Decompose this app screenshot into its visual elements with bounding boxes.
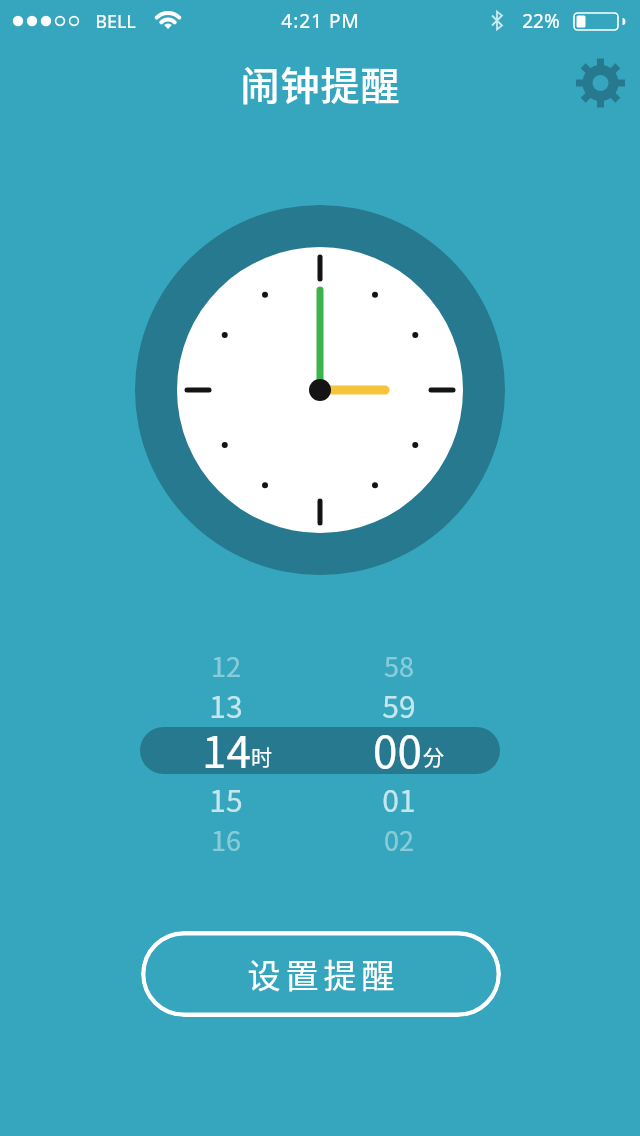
staticText: 16: [211, 820, 241, 859]
staticText: BELL: [95, 9, 136, 34]
button[interactable]: [140, 727, 500, 774]
staticText: 00: [373, 717, 422, 771]
staticText: 01: [382, 777, 416, 819]
staticText: 59: [382, 683, 416, 725]
staticText: 时: [251, 741, 272, 771]
button[interactable]: [574, 57, 626, 109]
staticText: 15: [209, 777, 243, 819]
staticText: 闹钟提醒: [240, 55, 401, 111]
staticText: 02: [384, 820, 414, 859]
button[interactable]: 设置提醒: [141, 931, 501, 1017]
staticText: 设置提醒: [245, 950, 397, 998]
staticText: 22%: [522, 8, 560, 34]
staticText: 58: [384, 646, 414, 685]
staticText: 13: [209, 683, 243, 725]
staticText: 12: [211, 646, 241, 685]
staticText: 4:21 PM: [281, 8, 360, 34]
staticText: 14: [202, 717, 251, 771]
staticText: 分: [423, 741, 444, 771]
